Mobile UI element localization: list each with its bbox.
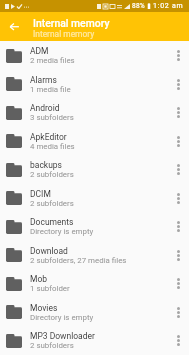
staticText: 2 subfolders (30, 170, 74, 179)
staticText: Directory is empty (30, 313, 94, 322)
staticText: Internal memory (33, 17, 110, 29)
button[interactable]: Download (0, 241, 189, 269)
button[interactable]: More options (167, 298, 189, 326)
staticText: 2 subfolders (30, 199, 74, 208)
staticText: backups (30, 160, 62, 170)
staticText: Documents (30, 217, 74, 227)
staticText: Directory is empty (30, 227, 94, 236)
button[interactable]: More options (167, 98, 189, 127)
staticText: Mob (30, 274, 48, 284)
button[interactable]: More options (167, 212, 189, 241)
staticText: 88% (132, 2, 145, 10)
staticText: Alarms (30, 75, 57, 85)
button[interactable]: backups (0, 155, 189, 184)
staticText: DCIM (30, 189, 51, 199)
button[interactable]: DCIM (0, 184, 189, 212)
staticText: Android (30, 103, 60, 113)
button[interactable]: Documents (0, 212, 189, 241)
button[interactable]: Android (0, 98, 189, 127)
button[interactable]: More options (167, 70, 189, 98)
staticText: 4 media files (30, 142, 75, 151)
staticText: 2 media files (30, 56, 75, 65)
button[interactable]: More options (167, 326, 189, 355)
staticText: 1:02 am (153, 2, 184, 10)
button[interactable]: Movies (0, 298, 189, 326)
staticText: Movies (30, 303, 58, 313)
staticText: Download (30, 246, 68, 256)
staticText: 2 subfolders, 27 media files (30, 256, 127, 265)
button[interactable]: Alarms (0, 70, 189, 98)
button[interactable]: ADM (0, 41, 189, 70)
button[interactable]: More options (167, 184, 189, 212)
button[interactable]: More options (167, 41, 189, 70)
button[interactable]: Back (0, 12, 29, 41)
button[interactable]: More options (167, 155, 189, 184)
button[interactable]: ApkEditor (0, 127, 189, 155)
staticText: ADM (30, 46, 49, 56)
staticText: MP3 Downloader (30, 331, 95, 341)
staticText: ApkEditor (30, 132, 67, 142)
staticText: 2 subfolders (30, 341, 74, 350)
staticText: 3 subfolders (30, 113, 74, 122)
staticText: 1 media file (30, 85, 71, 94)
button[interactable]: More options (167, 269, 189, 298)
button[interactable]: More options (167, 127, 189, 155)
button[interactable]: MP3 Downloader (0, 326, 189, 355)
staticText: 1 subfolder (30, 284, 70, 293)
button[interactable]: Mob (0, 269, 189, 298)
staticText: Internal memory (33, 29, 95, 39)
button[interactable]: More options (167, 241, 189, 269)
